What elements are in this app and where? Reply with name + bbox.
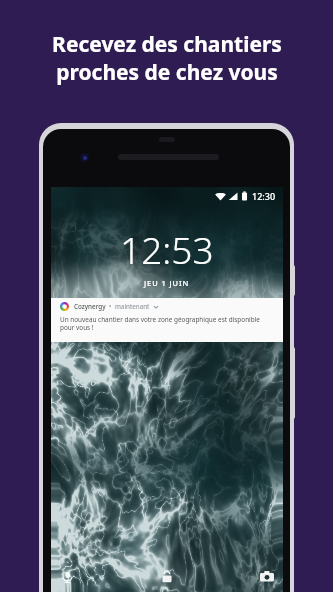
staticText: Un nouveau chantier dans votre zone géog… — [60, 315, 274, 332]
staticText: Cozynergy — [74, 302, 106, 311]
staticText: JEU 1 JUIN — [144, 278, 190, 288]
button[interactable]: Verrouillage — [156, 566, 178, 588]
staticText: Recevez des chantiers proches de chez vo… — [52, 30, 282, 86]
button[interactable]: Appareil photo — [256, 566, 278, 588]
button[interactable]: Cozynergy — [51, 298, 283, 342]
staticText: 12:53 — [120, 224, 214, 274]
staticText: 12:30 — [252, 190, 276, 202]
staticText: maintenant — [115, 302, 150, 311]
button[interactable]: Assistant vocal — [56, 566, 78, 588]
staticText: • — [109, 302, 112, 311]
